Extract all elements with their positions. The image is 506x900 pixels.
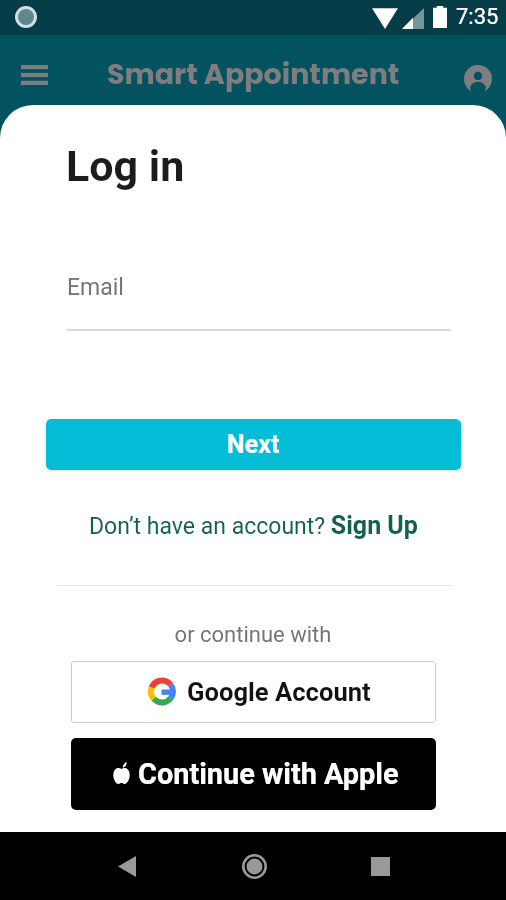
button[interactable]: Recent apps bbox=[350, 836, 410, 896]
button[interactable]: Google Account bbox=[71, 661, 436, 723]
button[interactable]: Account bbox=[454, 55, 502, 103]
staticText: Continue with Apple bbox=[138, 757, 399, 791]
button[interactable]: Next bbox=[46, 419, 461, 470]
button[interactable]: Continue with Apple bbox=[71, 738, 436, 810]
button[interactable]: Home bbox=[224, 836, 284, 896]
staticText: Email bbox=[67, 274, 124, 301]
button[interactable]: Menu bbox=[0, 45, 68, 105]
staticText: Don’t have an account? Sign Up bbox=[89, 511, 418, 540]
staticText: or continue with bbox=[0, 622, 506, 648]
staticText: Next bbox=[227, 430, 280, 459]
button[interactable]: Don’t have an account? Sign Up bbox=[89, 511, 418, 540]
staticText: Google Account bbox=[187, 677, 371, 707]
staticText: 7:35 bbox=[456, 4, 499, 30]
staticText: Log in bbox=[66, 141, 185, 191]
staticText: Smart Appointment bbox=[107, 54, 400, 94]
button[interactable]: Back bbox=[97, 836, 157, 896]
